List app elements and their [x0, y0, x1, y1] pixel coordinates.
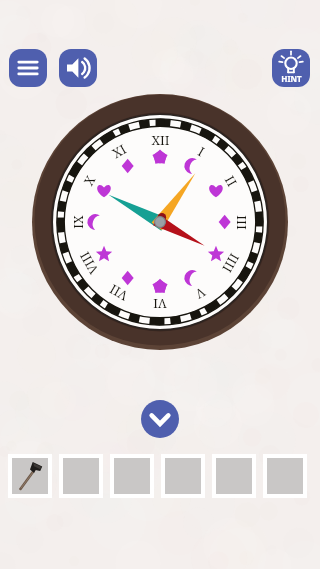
staticText: III — [233, 215, 251, 230]
staticText: HINT — [281, 73, 302, 84]
staticText: IX — [69, 215, 87, 229]
staticText: V — [192, 283, 209, 303]
button[interactable]: Menu — [9, 49, 47, 87]
staticText: VIII — [75, 248, 103, 278]
staticText: II — [221, 172, 241, 190]
button[interactable]: Sound — [59, 49, 97, 87]
staticText: X — [79, 172, 99, 189]
button[interactable]: Clock — [32, 94, 288, 350]
staticText: I — [195, 142, 208, 160]
button[interactable]: Hint — [272, 49, 310, 87]
staticText: IIII — [218, 250, 244, 276]
staticText: VI — [153, 295, 167, 313]
button[interactable]: Axe — [12, 458, 48, 494]
staticText: XI — [108, 140, 129, 162]
staticText: XII — [151, 131, 170, 149]
staticText: VII — [106, 280, 131, 305]
button[interactable]: Scroll down — [141, 400, 179, 438]
